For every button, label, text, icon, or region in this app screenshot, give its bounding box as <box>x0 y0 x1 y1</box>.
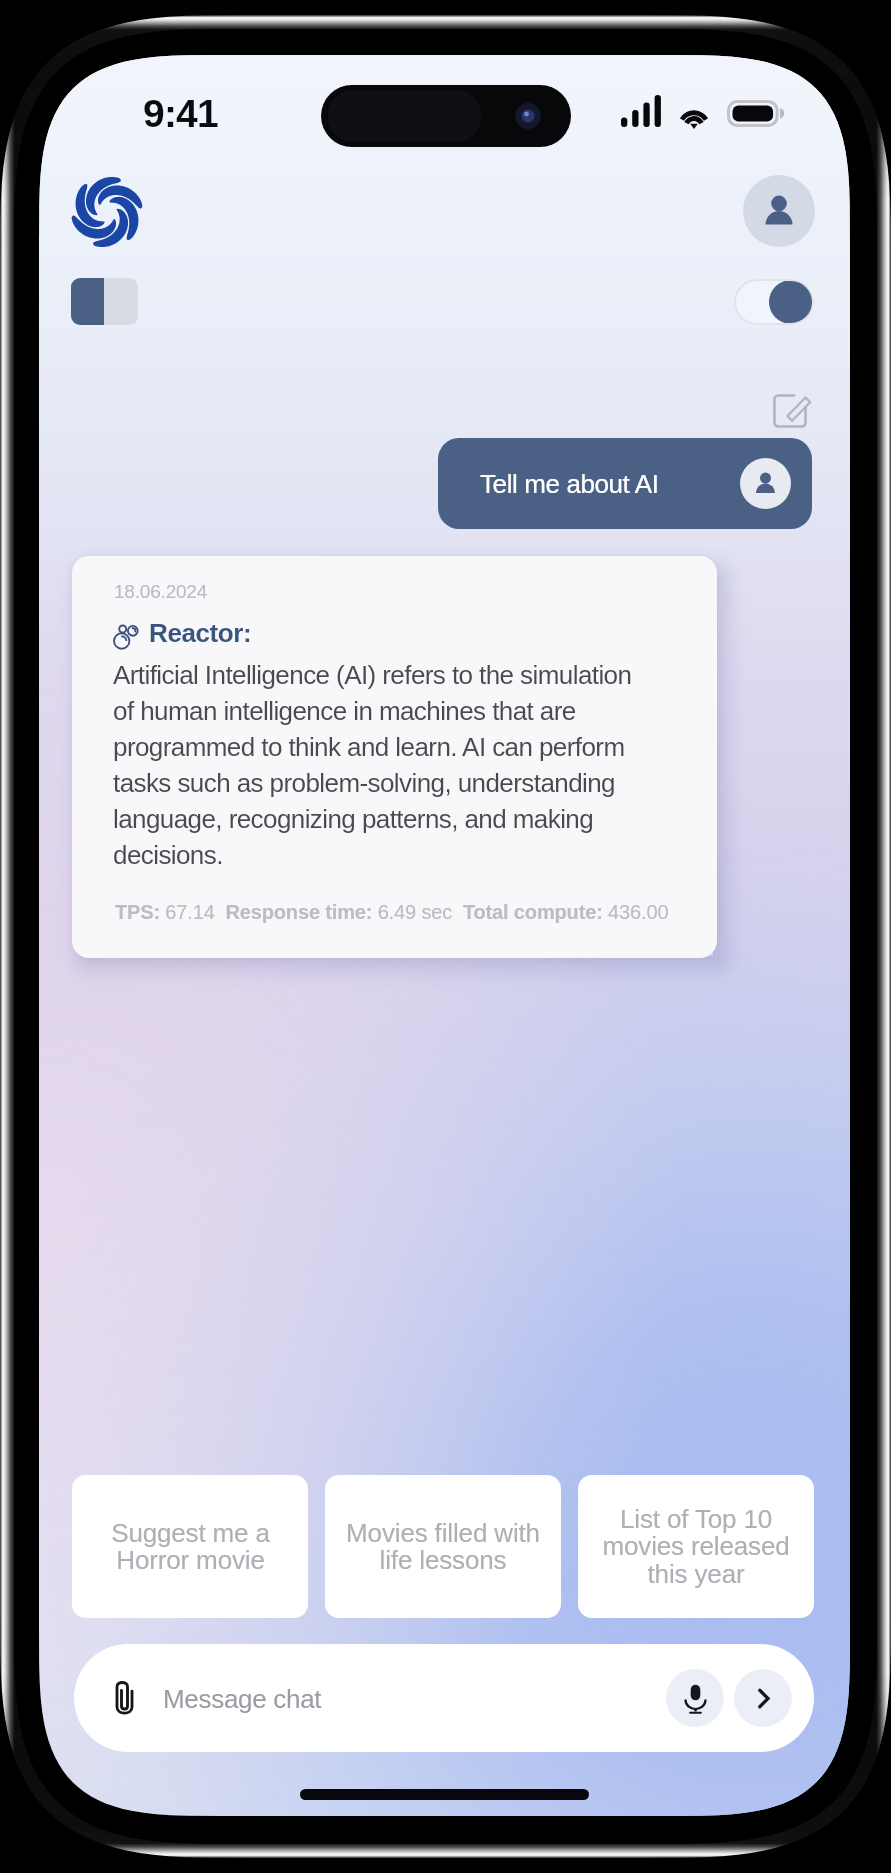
staticText: 9:41 <box>143 92 218 136</box>
staticText: List of Top 10 movies released this year <box>602 1504 790 1589</box>
button[interactable]: Profile <box>743 175 815 247</box>
button[interactable]: Tell me about AI <box>438 438 812 529</box>
staticText: Tell me about AI <box>480 469 659 498</box>
staticText: Movies filled with life lessons <box>346 1518 540 1575</box>
other: Attach file <box>112 1680 137 1717</box>
button[interactable]: Send <box>734 1669 792 1727</box>
button[interactable]: Mode toggle <box>734 279 814 325</box>
button[interactable]: Suggest me a Horror movie <box>72 1475 308 1618</box>
staticText: Reactor: <box>149 618 252 647</box>
button[interactable]: New chat <box>769 390 811 432</box>
button[interactable]: Attach file <box>74 1644 814 1752</box>
button[interactable]: Movies filled with life lessons <box>325 1475 561 1618</box>
staticText: 18.06.2024 <box>114 581 208 602</box>
button[interactable]: Voice input <box>666 1669 724 1727</box>
staticText: Suggest me a Horror movie <box>111 1518 270 1575</box>
staticText: Message chat <box>163 1684 322 1713</box>
button[interactable]: List of Top 10 movies released this year <box>578 1475 814 1618</box>
button[interactable]: 18.06.2024 <box>72 556 717 958</box>
button[interactable]: Layout mode <box>71 278 138 325</box>
button[interactable]: Reactor logo <box>73 178 141 246</box>
staticText: TPS: 67.14 Response time: 6.49 sec Total… <box>115 901 669 923</box>
staticText: Artificial Intelligence (AI) refers to t… <box>113 660 649 869</box>
